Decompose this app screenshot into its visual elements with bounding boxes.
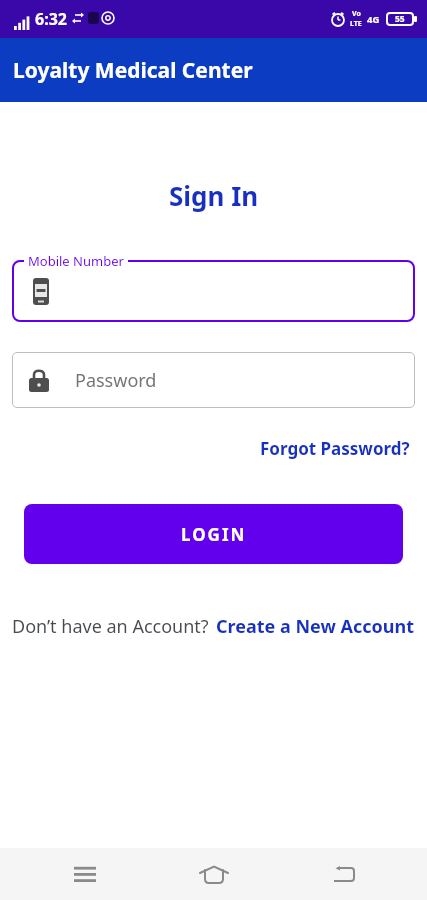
staticText: LOGIN: [181, 523, 247, 546]
button[interactable]: LOGIN: [24, 504, 403, 564]
button[interactable]: [74, 867, 96, 881]
staticText: LTE: [350, 19, 362, 29]
button[interactable]: Forgot Password?: [260, 437, 410, 460]
button[interactable]: [12, 260, 415, 322]
staticText: 55: [395, 13, 405, 25]
staticText: Vo: [352, 9, 361, 19]
staticText: 6:32: [35, 8, 67, 30]
button[interactable]: Password: [12, 352, 415, 408]
staticText: Sign In: [169, 178, 259, 213]
button[interactable]: [200, 865, 228, 884]
staticText: Mobile Number: [28, 252, 124, 270]
staticText: Don’t have an Account?: [12, 614, 209, 639]
staticText: Loyalty Medical Center: [13, 56, 253, 85]
staticText: 4G: [367, 13, 380, 26]
button[interactable]: Create a New Account: [216, 614, 415, 639]
staticText: Password: [75, 368, 157, 393]
button[interactable]: [333, 866, 355, 882]
